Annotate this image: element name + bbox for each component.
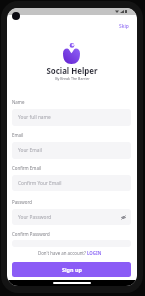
staticText: LOGIN (87, 250, 102, 256)
staticText: Social Helper (46, 66, 98, 77)
staticText: Your Email (18, 147, 42, 154)
button[interactable]: Skip (117, 21, 131, 32)
staticText: Your full name (18, 114, 51, 121)
staticText: Skip (119, 23, 129, 30)
button[interactable]: Sign up (12, 262, 131, 277)
staticText: Sign up (62, 266, 82, 273)
staticText: Confirm Password (12, 231, 50, 237)
staticText: Your Password (18, 214, 52, 221)
button[interactable]: LOGIN (87, 250, 102, 256)
button[interactable]: Toggle password visibility (120, 214, 126, 220)
staticText: Don't have an account? (38, 250, 87, 256)
staticText: Confirm Your Email (18, 180, 62, 187)
button[interactable]: Confirm Your Email (12, 175, 131, 191)
button[interactable]: Your full name (12, 109, 131, 126)
button[interactable]: Your Email (12, 142, 131, 159)
button[interactable]: Your Password (12, 209, 131, 225)
staticText: Password (12, 199, 32, 205)
staticText: Confirm Email (12, 165, 42, 171)
staticText: Email (12, 132, 24, 138)
staticText: Name (12, 99, 25, 105)
staticText: By Break The Barrier (55, 76, 90, 81)
